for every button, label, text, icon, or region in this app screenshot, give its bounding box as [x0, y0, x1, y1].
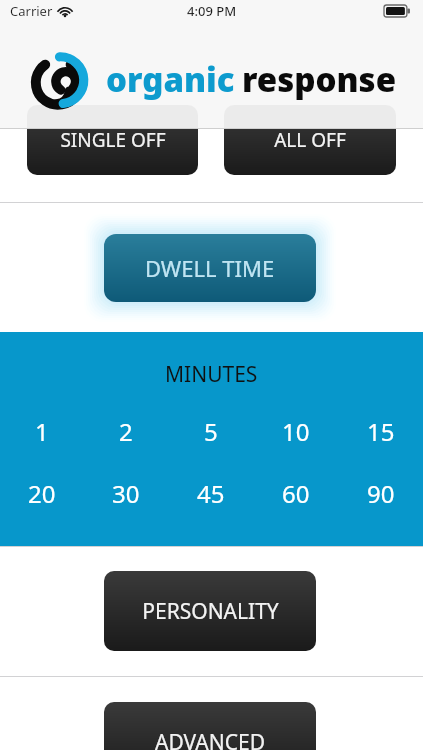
button[interactable]: SINGLE OFF — [27, 105, 198, 175]
button[interactable]: PERSONALITY — [104, 571, 316, 651]
staticText: DWELL TIME — [145, 253, 275, 283]
staticText: 15 — [367, 415, 395, 448]
staticText: 2 — [119, 415, 133, 448]
staticText: 60 — [282, 477, 310, 510]
button[interactable]: 20 — [0, 476, 84, 510]
button[interactable]: DWELL TIME — [104, 234, 316, 302]
staticText: response — [242, 57, 397, 102]
button[interactable]: 5 — [168, 414, 253, 448]
staticText: 5 — [204, 415, 218, 448]
staticText: MINUTES — [165, 360, 258, 389]
staticText: 1 — [35, 415, 49, 448]
staticText: 4:09 PM — [187, 2, 237, 20]
staticText: 20 — [28, 477, 56, 510]
staticText: ADVANCED — [155, 728, 265, 750]
staticText: ALL OFF — [274, 127, 346, 153]
button[interactable]: 30 — [84, 476, 168, 510]
button[interactable]: 90 — [338, 476, 423, 510]
button[interactable]: 10 — [253, 414, 338, 448]
staticText: Carrier — [10, 2, 53, 20]
button[interactable]: 15 — [338, 414, 423, 448]
button[interactable]: 60 — [253, 476, 338, 510]
button[interactable]: 2 — [84, 414, 168, 448]
staticText: 90 — [367, 477, 395, 510]
staticText: PERSONALITY — [142, 597, 279, 626]
button[interactable]: 45 — [168, 476, 253, 510]
button[interactable]: 1 — [0, 414, 84, 448]
staticText: organic — [106, 57, 235, 102]
button[interactable]: ADVANCED — [104, 702, 316, 750]
staticText: 10 — [282, 415, 310, 448]
staticText: SINGLE OFF — [60, 127, 166, 153]
staticText: 45 — [197, 477, 225, 510]
staticText: 30 — [112, 477, 140, 510]
button[interactable]: ALL OFF — [224, 105, 396, 175]
